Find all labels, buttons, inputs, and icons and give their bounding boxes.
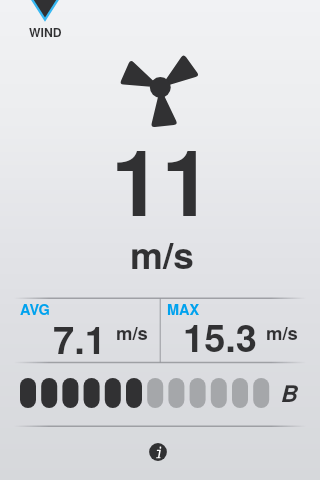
button[interactable]: Info bbox=[138, 432, 178, 472]
staticText: m/s bbox=[116, 319, 148, 345]
staticText: MAX bbox=[167, 299, 200, 320]
staticText: 7.1 bbox=[53, 311, 106, 365]
staticText: 11 bbox=[111, 114, 213, 244]
staticText: 15.3 bbox=[183, 309, 257, 363]
button[interactable]: B bbox=[0, 370, 320, 414]
button[interactable]: WIND bbox=[14, 0, 76, 40]
staticText: m/s bbox=[266, 319, 298, 345]
button[interactable]: MAX bbox=[162, 298, 320, 362]
staticText: AVG bbox=[20, 299, 50, 320]
staticText: m/s bbox=[130, 227, 194, 280]
staticText: B bbox=[280, 376, 297, 409]
button[interactable]: AVG bbox=[0, 298, 161, 362]
staticText: WIND bbox=[29, 23, 62, 40]
